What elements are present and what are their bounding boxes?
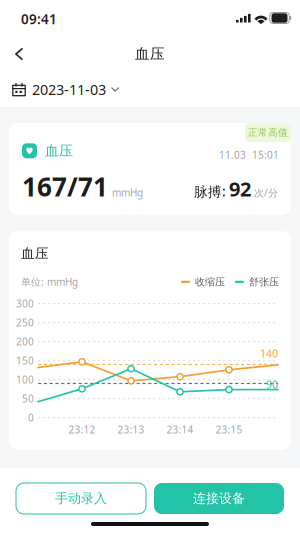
staticText: 舒张压 [249,276,279,288]
staticText: 250 [16,316,34,329]
button[interactable]: 手动录入 [16,483,146,514]
staticText: 150 [16,354,34,367]
staticText: 23:14 [166,423,193,436]
staticText: 脉搏: [194,182,226,201]
staticText: 单位: mmHg [21,275,78,289]
button[interactable]: Back [4,39,34,69]
staticText: 23:15 [215,423,242,436]
staticText: 手动录入 [55,490,107,507]
staticText: 140 [260,346,278,361]
staticText: 0 [28,411,34,424]
staticText: 50 [22,392,34,405]
staticText: 200 [16,335,34,348]
staticText: 100 [16,373,34,386]
staticText: 连接设备 [193,490,245,507]
staticText: 血压 [21,245,49,262]
staticText: mmHg [112,186,143,199]
staticText: 次/分 [254,186,278,199]
button[interactable]: 连接设备 [154,483,284,514]
staticText: 167/71 [22,169,108,204]
staticText: 2023-11-03 [32,80,106,99]
staticText: 血压 [45,142,73,160]
staticText: 收缩压 [195,276,225,288]
staticText: 09:41 [21,10,57,28]
staticText: 23:13 [117,423,144,436]
staticText: 300 [16,297,34,310]
staticText: 23:12 [68,423,95,436]
button[interactable]: 2023-11-03 [0,72,133,107]
staticText: 血压 [135,45,165,63]
staticText: 正常高值 [248,126,288,139]
staticText: 90 [266,377,278,392]
staticText: 11.03 15:01 [219,148,279,162]
staticText: 92 [229,175,251,202]
